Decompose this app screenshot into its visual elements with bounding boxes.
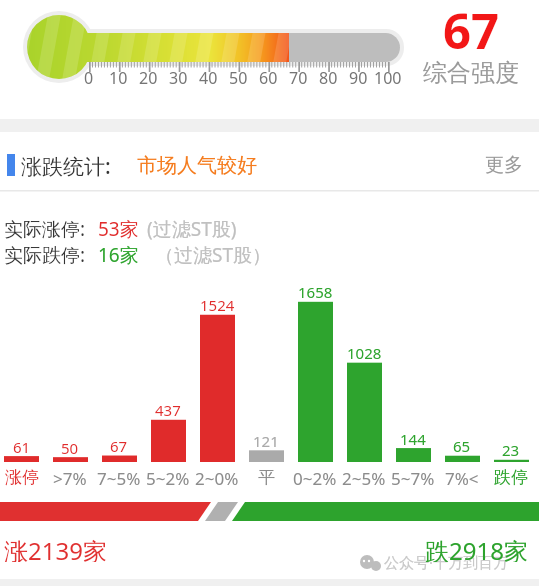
staticText: 70 (289, 67, 308, 87)
staticText: 实际涨停: (4, 216, 86, 240)
staticText: 50 (61, 438, 79, 456)
staticText: 20 (139, 67, 158, 87)
staticText: 涨停 (5, 467, 39, 487)
staticText: 1524 (200, 295, 235, 313)
staticText: 60 (259, 67, 278, 87)
staticText: 更多 (485, 153, 523, 177)
staticText: 16家 (98, 242, 139, 266)
staticText: 实际跌停: (4, 242, 86, 266)
staticText: 7~5% (97, 467, 141, 487)
staticText: 100 (374, 67, 402, 87)
staticText: 53家 (98, 216, 139, 240)
staticText: >7% (53, 467, 87, 487)
staticText: 0~2% (293, 467, 337, 487)
staticText: 0 (84, 67, 94, 87)
staticText: 市场人气较好 (137, 153, 257, 178)
staticText: 50 (229, 67, 248, 87)
staticText: 跌停 (494, 467, 528, 487)
staticText: 平 (258, 467, 275, 487)
staticText: 1028 (347, 343, 382, 361)
staticText: 437 (155, 400, 181, 418)
staticText: 7%< (445, 467, 479, 487)
staticText: 144 (400, 429, 426, 447)
staticText: 10 (109, 67, 128, 87)
staticText: 90 (349, 67, 368, 87)
staticText: 2~5% (342, 467, 386, 487)
staticText: 公众号·十万到百万 (384, 552, 509, 572)
staticText: 67 (443, 0, 500, 49)
staticText: 80 (319, 67, 338, 87)
staticText: 61 (13, 437, 31, 455)
staticText: 67 (110, 436, 128, 454)
staticText: 65 (453, 436, 471, 454)
staticText: 涨2139家 (4, 534, 107, 562)
staticText: 涨跌统计: (21, 152, 111, 178)
staticText: 5~7% (391, 467, 435, 487)
staticText: （过滤ST股） (155, 242, 271, 266)
staticText: 5~2% (146, 467, 190, 487)
staticText: 2~0% (195, 467, 239, 487)
staticText: 23 (502, 440, 520, 458)
staticText: 40 (199, 67, 218, 87)
button[interactable]: 更多 (485, 152, 531, 178)
staticText: 跌2918家 (425, 534, 528, 562)
staticText: (过滤ST股) (147, 216, 237, 240)
staticText: 1658 (298, 282, 333, 300)
staticText: 30 (169, 67, 188, 87)
staticText: 综合强度 (423, 58, 519, 86)
staticText: 121 (253, 431, 279, 449)
